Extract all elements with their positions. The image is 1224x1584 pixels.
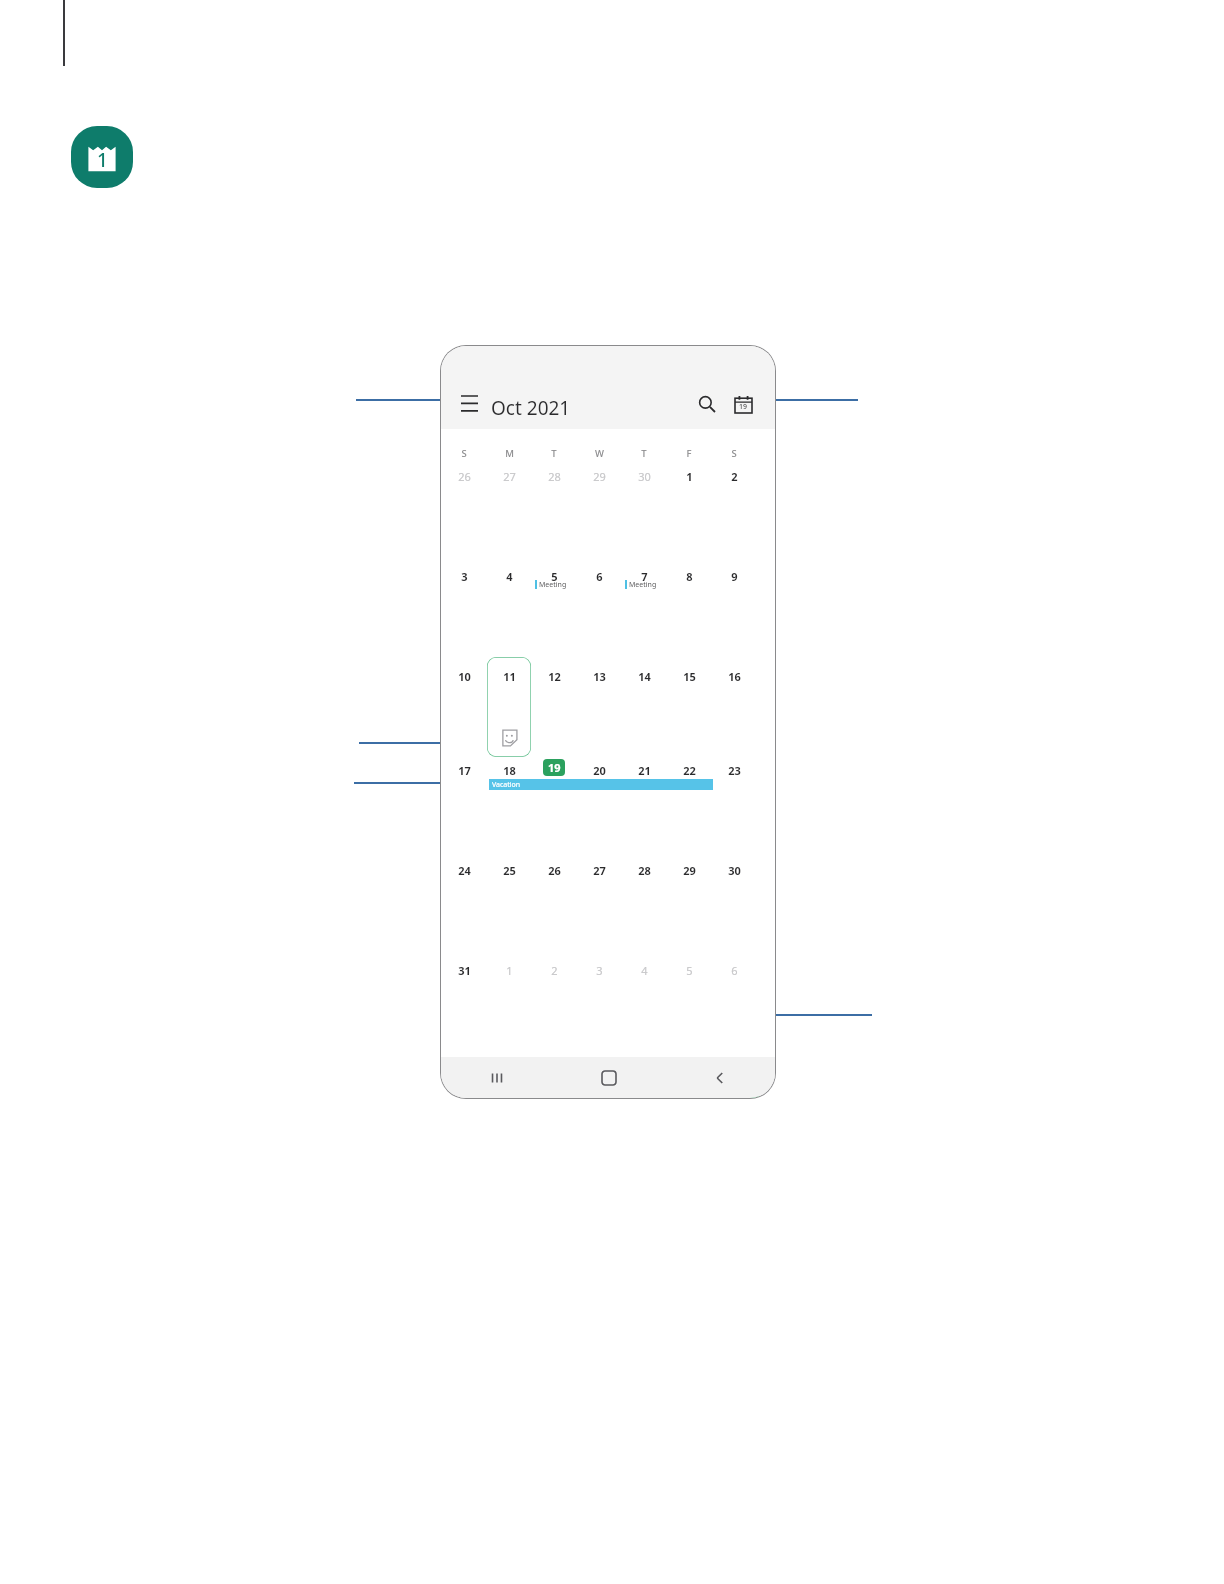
staticText: 30	[638, 469, 651, 484]
button[interactable]: 7	[622, 567, 666, 585]
button[interactable]: W	[577, 444, 621, 462]
button[interactable]: 10	[442, 667, 486, 685]
staticText: 22	[683, 763, 696, 778]
button[interactable]	[487, 657, 531, 757]
staticText: 1	[506, 963, 513, 978]
staticText: S	[461, 447, 467, 460]
staticText: 19	[739, 402, 748, 412]
button[interactable]: S	[712, 444, 756, 462]
button[interactable]: 1	[667, 467, 711, 485]
staticText: 28	[638, 863, 651, 878]
button[interactable]: 3	[577, 961, 621, 979]
button[interactable]: 30	[622, 467, 666, 485]
button[interactable]: Sticker	[500, 729, 518, 747]
button[interactable]: 24	[442, 861, 486, 879]
staticText: 12	[548, 669, 561, 684]
staticText: 27	[503, 469, 516, 484]
staticText: T	[551, 447, 557, 460]
button[interactable]: 19	[543, 759, 565, 776]
button[interactable]: Vacation	[489, 779, 713, 790]
staticText: S	[731, 447, 737, 460]
staticText: Meeting	[539, 580, 567, 590]
button[interactable]: 31	[442, 961, 486, 979]
button[interactable]: 22	[667, 761, 711, 779]
button[interactable]: 11	[487, 667, 531, 685]
button[interactable]: 26	[442, 467, 486, 485]
button[interactable]: 2	[532, 961, 576, 979]
button[interactable]: 4	[622, 961, 666, 979]
staticText: F	[686, 447, 692, 460]
staticText: 30	[728, 863, 741, 878]
button[interactable]: Search	[693, 390, 721, 418]
button[interactable]: Recent apps	[441, 1057, 553, 1098]
staticText: M	[505, 447, 514, 460]
button[interactable]: 2	[712, 467, 756, 485]
staticText: 11	[503, 669, 516, 684]
staticText: 27	[593, 863, 606, 878]
staticText: 4	[641, 963, 648, 978]
button[interactable]: Open navigation menu	[455, 389, 483, 417]
staticText: 16	[728, 669, 741, 684]
button[interactable]: 6	[712, 961, 756, 979]
button[interactable]: 28	[622, 861, 666, 879]
button[interactable]: T	[622, 444, 666, 462]
staticText: Vacation	[492, 780, 521, 790]
button[interactable]: 29	[577, 467, 621, 485]
staticText: 29	[593, 469, 606, 484]
button[interactable]: 14	[622, 667, 666, 685]
button[interactable]: 8	[667, 567, 711, 585]
button[interactable]: 20	[577, 761, 621, 779]
staticText: 24	[458, 863, 471, 878]
button[interactable]: Meeting	[625, 579, 657, 590]
staticText: 6	[731, 963, 738, 978]
staticText: 3	[461, 569, 468, 584]
staticText: 29	[683, 863, 696, 878]
staticText: 18	[503, 763, 516, 778]
button[interactable]: F	[667, 444, 711, 462]
button[interactable]: 29	[667, 861, 711, 879]
button[interactable]: Meeting	[535, 579, 567, 590]
button[interactable]: 12	[532, 667, 576, 685]
button[interactable]: 25	[487, 861, 531, 879]
button[interactable]: S	[442, 444, 486, 462]
staticText: Oct 2021	[491, 395, 571, 421]
button[interactable]: Go to today	[729, 390, 757, 418]
button[interactable]: 16	[712, 667, 756, 685]
button[interactable]: 15	[667, 667, 711, 685]
button[interactable]: 27	[487, 467, 531, 485]
staticText: 3	[596, 963, 603, 978]
button[interactable]: Back	[664, 1057, 775, 1098]
button[interactable]: 1	[487, 961, 531, 979]
staticText: 21	[638, 763, 651, 778]
button[interactable]: 26	[532, 861, 576, 879]
staticText: 31	[458, 963, 471, 978]
staticText: 28	[548, 469, 561, 484]
button[interactable]: 18	[487, 761, 531, 779]
button[interactable]: 30	[712, 861, 756, 879]
staticText: 17	[458, 763, 471, 778]
button[interactable]: T	[532, 444, 576, 462]
button[interactable]: 28	[532, 467, 576, 485]
button[interactable]: 9	[712, 567, 756, 585]
staticText: T	[641, 447, 647, 460]
staticText: 1	[97, 147, 108, 173]
button[interactable]: 5	[532, 567, 576, 585]
button[interactable]: 21	[622, 761, 666, 779]
button[interactable]: 17	[442, 761, 486, 779]
staticText: 1	[686, 469, 693, 484]
button[interactable]: M	[487, 444, 531, 462]
button[interactable]: 27	[577, 861, 621, 879]
button[interactable]: 23	[712, 761, 756, 779]
staticText: 13	[593, 669, 606, 684]
staticText: 20	[593, 763, 606, 778]
staticText: 5	[686, 963, 693, 978]
button[interactable]: 13	[577, 667, 621, 685]
button[interactable]: 3	[442, 567, 486, 585]
button[interactable]: Calendar app icon	[71, 126, 133, 188]
button[interactable]: 4	[487, 567, 531, 585]
button[interactable]: Add event	[709, 1073, 759, 1098]
button[interactable]: 6	[577, 567, 621, 585]
button[interactable]: 5	[667, 961, 711, 979]
staticText: 5	[551, 569, 558, 584]
button[interactable]: Home	[553, 1057, 664, 1098]
